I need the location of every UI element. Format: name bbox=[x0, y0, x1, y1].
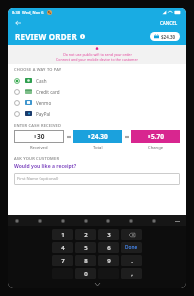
button[interactable]: 8 bbox=[75, 255, 96, 266]
button[interactable]: 6 bbox=[98, 242, 119, 253]
staticText: Would you like a receipt? bbox=[14, 163, 77, 170]
button[interactable]: Keyboard tool 1 bbox=[13, 217, 21, 225]
staticText: Change bbox=[148, 145, 164, 151]
button[interactable]: Keyboard tool 6 bbox=[127, 217, 135, 225]
button[interactable]: Back bbox=[13, 18, 23, 28]
staticText: $ bbox=[34, 134, 37, 139]
staticText: 5 bbox=[84, 244, 88, 252]
staticText: Done bbox=[125, 244, 138, 251]
button[interactable]: Venmo bbox=[14, 97, 180, 108]
staticText: 9 bbox=[107, 257, 111, 265]
staticText: 2 bbox=[84, 231, 88, 239]
staticText: 8:38 Wed, Nov 6 bbox=[12, 10, 44, 15]
button[interactable]: Keyboard tool 5 bbox=[104, 217, 112, 225]
staticText: Do not use public wifi to send your orde… bbox=[63, 52, 132, 57]
button[interactable]: Credit card bbox=[14, 86, 180, 97]
button[interactable]: PayPal bbox=[14, 108, 180, 119]
staticText: , bbox=[131, 270, 133, 278]
staticText: 1 bbox=[61, 231, 65, 239]
button[interactable]: $ bbox=[131, 130, 180, 143]
button[interactable]: . bbox=[121, 255, 142, 266]
staticText: $ bbox=[148, 134, 151, 139]
button[interactable]: 3 bbox=[98, 229, 119, 240]
staticText: i bbox=[82, 34, 84, 39]
staticText: 0 bbox=[84, 270, 88, 278]
button[interactable]: First Name (optional) bbox=[14, 173, 180, 185]
button[interactable]: 1 bbox=[52, 229, 73, 240]
staticText: . bbox=[131, 257, 133, 265]
staticText: ENTER CASH RECEIVED bbox=[14, 123, 62, 128]
staticText: 6 bbox=[107, 244, 111, 252]
button[interactable]: 7 bbox=[52, 255, 73, 266]
staticText: CANCEL bbox=[160, 20, 178, 26]
button[interactable]: Done bbox=[121, 242, 142, 253]
button[interactable]: Keyboard tool 4 bbox=[82, 217, 90, 225]
staticText: 24.30 bbox=[91, 132, 108, 141]
staticText: CHOOSE A WAY TO PAY bbox=[14, 67, 62, 72]
staticText: 7 bbox=[61, 257, 65, 265]
button[interactable]: 0 bbox=[75, 268, 96, 279]
staticText: First Name (optional) bbox=[17, 176, 59, 182]
staticText: REVIEW ORDER bbox=[15, 31, 77, 42]
button[interactable]: 9 bbox=[98, 255, 119, 266]
staticText: 4 bbox=[61, 244, 65, 252]
button[interactable]: $24.30 bbox=[150, 32, 180, 41]
button[interactable]: Keyboard tool 7 bbox=[150, 217, 158, 225]
button[interactable]: Info bbox=[80, 34, 85, 39]
staticText: Connect and your mobile device to the cu… bbox=[56, 57, 138, 62]
staticText: $24.30 bbox=[161, 34, 176, 40]
staticText: Cash bbox=[36, 78, 47, 84]
button[interactable]: 4 bbox=[52, 242, 73, 253]
staticText: 3 bbox=[107, 231, 111, 239]
button[interactable]: 5 bbox=[75, 242, 96, 253]
button[interactable]: Backspace bbox=[121, 229, 142, 240]
staticText: Credit card bbox=[36, 89, 60, 95]
button[interactable]: , bbox=[121, 268, 142, 279]
button[interactable]: $ bbox=[73, 130, 122, 143]
button[interactable]: $ bbox=[14, 130, 64, 143]
staticText: ASK YOUR CUSTOMER bbox=[14, 156, 60, 161]
staticText: $ bbox=[88, 134, 91, 139]
button[interactable]: Cash bbox=[14, 75, 180, 86]
staticText: 5.70 bbox=[151, 132, 164, 141]
staticText: Venmo bbox=[36, 100, 52, 106]
button[interactable]: Keyboard tool 3 bbox=[59, 217, 67, 225]
button[interactable]: Keyboard tool 2 bbox=[36, 217, 44, 225]
staticText: 8 bbox=[84, 257, 88, 265]
button[interactable]: CANCEL bbox=[157, 19, 181, 27]
staticText: Received bbox=[30, 145, 48, 151]
button[interactable]: Hide keyboard bbox=[173, 217, 181, 225]
button[interactable]: 2 bbox=[75, 229, 96, 240]
staticText: 30 bbox=[37, 132, 45, 141]
staticText: Total bbox=[93, 145, 103, 151]
staticText: PayPal bbox=[36, 111, 51, 117]
